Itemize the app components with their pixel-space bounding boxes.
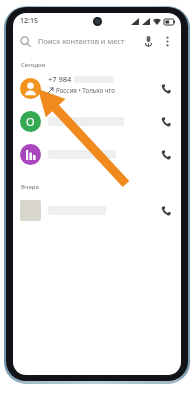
staticText: 2You: [48, 95, 63, 103]
staticText: O: [26, 114, 35, 129]
button[interactable]: Call: [157, 80, 175, 98]
staticText: Поиск контактов и мест: [38, 36, 141, 46]
button[interactable]: Call: [13, 194, 181, 227]
staticText: Россия • Только что: [56, 86, 115, 94]
button[interactable]: Search: [13, 29, 181, 53]
other: Search: [20, 36, 31, 47]
button[interactable]: Call: [157, 146, 175, 164]
button[interactable]: More options: [160, 34, 174, 48]
button[interactable]: Call: [157, 113, 175, 131]
staticText: 12:15: [20, 16, 38, 26]
staticText: +7 984: [48, 74, 72, 84]
button[interactable]: Voice search: [141, 34, 155, 48]
button[interactable]: Call: [13, 138, 181, 171]
button[interactable]: Call: [157, 202, 175, 220]
button[interactable]: +7 984: [13, 72, 181, 105]
staticText: Сегодня: [21, 61, 46, 69]
staticText: Вчера: [21, 183, 39, 191]
button[interactable]: O: [13, 105, 181, 138]
